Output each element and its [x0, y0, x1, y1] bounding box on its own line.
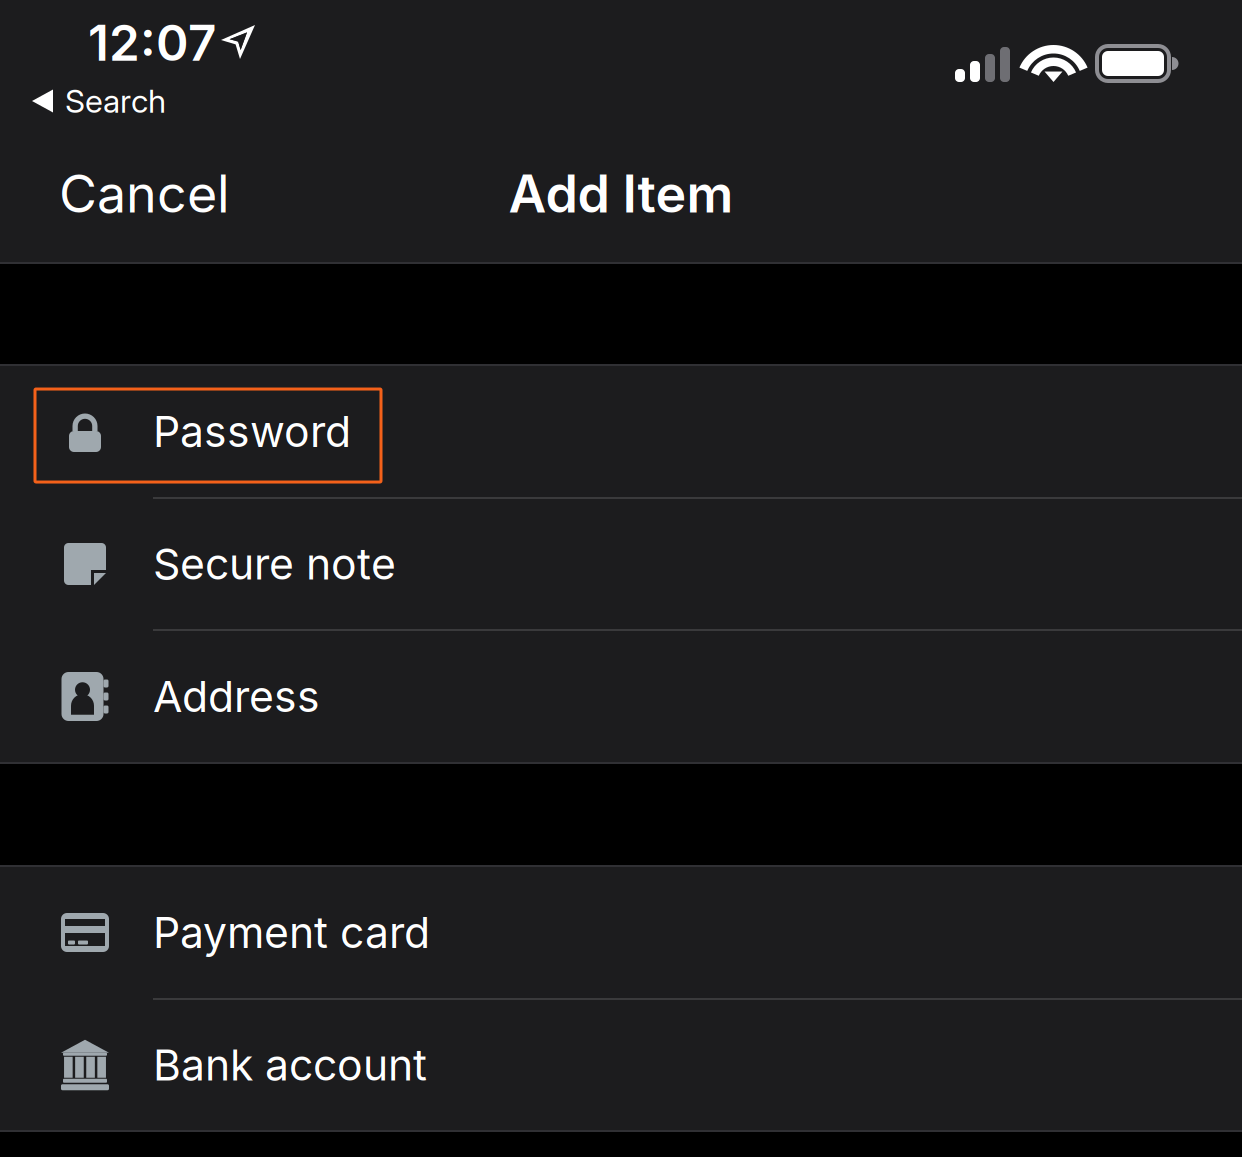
button[interactable]: Password [0, 366, 1242, 497]
staticText: Secure note [153, 538, 396, 590]
staticText: Password [153, 406, 351, 457]
staticText: Add Item [508, 162, 733, 225]
staticText: Cancel [59, 162, 230, 225]
staticText: 12:07 [88, 13, 216, 73]
button[interactable]: Secure note [0, 499, 1242, 629]
staticText: Address [153, 671, 320, 722]
button[interactable]: Search [0, 77, 1242, 125]
staticText: Payment card [153, 907, 430, 958]
staticText: Bank account [153, 1039, 427, 1091]
button[interactable]: Bank account [0, 1000, 1242, 1130]
button[interactable]: Cancel [0, 125, 270, 262]
button[interactable]: Payment card [0, 867, 1242, 998]
button[interactable]: Address [0, 631, 1242, 762]
staticText: Search [65, 82, 166, 120]
